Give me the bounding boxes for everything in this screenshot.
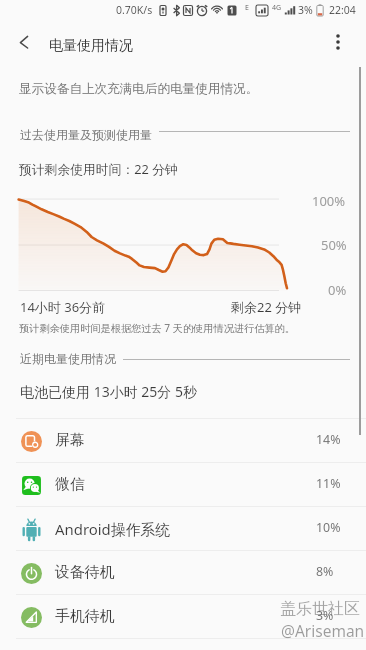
staticText: 设备待机: [55, 563, 115, 582]
staticText: 预计剩余使用时间是根据您过去 7 天的使用情况进行估算的。: [19, 321, 295, 335]
staticText: 微信: [55, 475, 85, 494]
staticText: 0%: [328, 281, 347, 299]
staticText: 14%: [316, 431, 341, 448]
button[interactable]: More options: [324, 28, 352, 56]
staticText: 14小时 36分前: [20, 298, 106, 316]
staticText: 0.70K/s: [116, 3, 153, 17]
staticText: 100%: [312, 192, 346, 210]
staticText: 电池已使用 13小时 25分 5秒: [20, 382, 197, 401]
staticText: 屏幕: [55, 431, 85, 450]
staticText: 22:04: [329, 3, 356, 17]
button[interactable]: 微信: [0, 463, 366, 507]
staticText: 剩余22 分钟: [231, 298, 302, 316]
staticText: 50%: [321, 236, 347, 254]
staticText: 过去使用量及预测使用量: [20, 127, 152, 142]
button[interactable]: Back: [8, 26, 40, 58]
staticText: E: [245, 3, 249, 13]
staticText: 预计剩余使用时间：22 分钟: [19, 160, 178, 177]
staticText: 11%: [316, 475, 341, 492]
staticText: 10%: [316, 519, 341, 536]
staticText: Android操作系统: [55, 519, 171, 539]
staticText: 电量使用情况: [49, 37, 133, 55]
button[interactable]: Android操作系统: [0, 507, 366, 551]
staticText: 3%: [298, 3, 313, 17]
staticText: 4G: [272, 3, 282, 13]
staticText: 近期电量使用情况: [20, 351, 116, 366]
staticText: 3%: [316, 607, 334, 624]
staticText: 显示设备自上次充满电后的电量使用情况。: [19, 81, 259, 97]
staticText: 盖乐世社区: [280, 599, 360, 619]
button[interactable]: 屏幕: [0, 419, 366, 463]
staticText: 手机待机: [55, 607, 115, 626]
button[interactable]: 设备待机: [0, 551, 366, 595]
staticText: 8%: [316, 563, 334, 580]
staticText: @Ariseman: [281, 620, 365, 641]
button[interactable]: 手机待机: [0, 595, 366, 639]
